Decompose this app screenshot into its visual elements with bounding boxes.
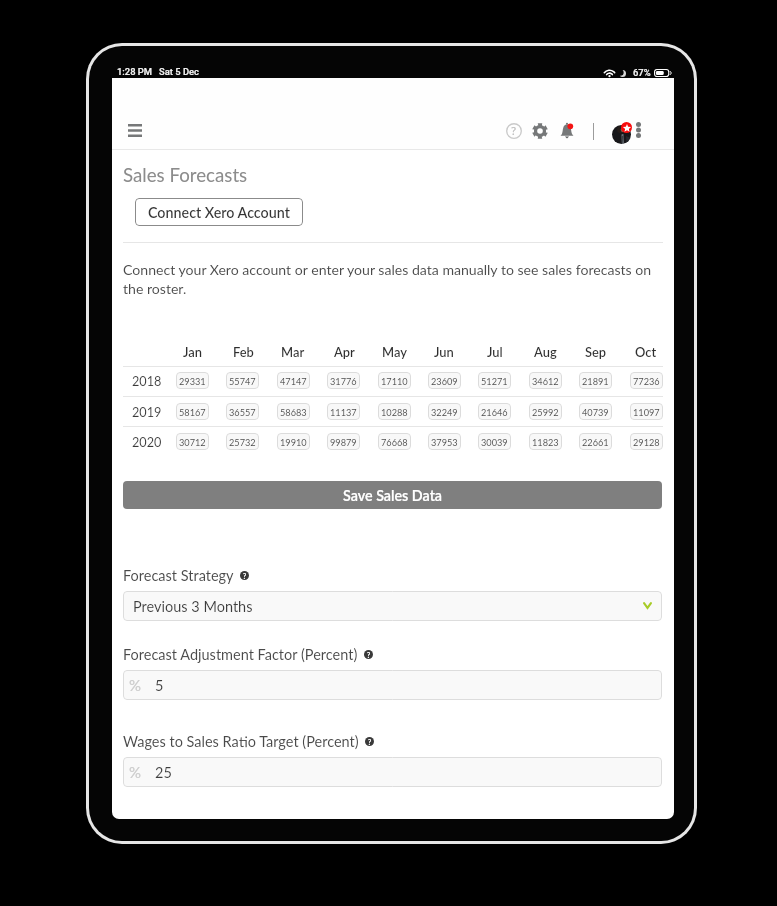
staticText: 25992	[532, 407, 559, 418]
staticText: Jan	[183, 344, 202, 359]
staticText: 22661	[582, 437, 609, 448]
button[interactable]: Save Sales Data	[123, 481, 662, 509]
button[interactable]: 29331	[176, 372, 209, 389]
staticText: 99879	[330, 437, 357, 448]
staticText: ?	[511, 124, 517, 138]
staticText: Apr	[334, 344, 355, 359]
button[interactable]: 11137	[327, 403, 360, 420]
staticText: 36557	[229, 407, 256, 418]
staticText: Sales Forecasts	[123, 164, 248, 186]
button[interactable]: 30712	[176, 433, 209, 450]
staticText: Feb	[233, 344, 254, 359]
staticText: 31776	[330, 376, 357, 387]
staticText: Sep	[585, 344, 607, 359]
staticText: 76668	[381, 437, 408, 448]
staticText: 40739	[582, 407, 609, 418]
staticText: 23609	[431, 376, 458, 387]
staticText: 29128	[633, 437, 660, 448]
staticText: 2018	[132, 373, 162, 388]
staticText: 30712	[179, 437, 206, 448]
staticText: May	[382, 344, 407, 359]
staticText: 77236	[633, 376, 660, 387]
button[interactable]: 40739	[579, 403, 612, 420]
button[interactable]: 58167	[176, 403, 209, 420]
staticText: 29331	[179, 376, 206, 387]
staticText: 21646	[481, 407, 508, 418]
button[interactable]: 99879	[327, 433, 360, 450]
staticText: Save Sales Data	[343, 487, 443, 504]
staticText: Forecast Strategy	[123, 567, 234, 584]
button[interactable]: 25992	[529, 403, 562, 420]
button[interactable]: Menu	[122, 117, 148, 143]
button[interactable]: 47147	[277, 372, 310, 389]
staticText: 10288	[381, 407, 408, 418]
staticText: 30039	[481, 437, 508, 448]
staticText: 11137	[330, 407, 357, 418]
staticText: Connect Xero Account	[148, 204, 290, 221]
staticText: Forecast Adjustment Factor (Percent)	[123, 646, 358, 663]
button[interactable]: 21646	[478, 403, 511, 420]
staticText: ?	[367, 651, 371, 659]
staticText: 67%	[633, 67, 651, 78]
staticText: 34612	[532, 376, 559, 387]
button[interactable]: 76668	[378, 433, 411, 450]
staticText: 47147	[280, 376, 307, 387]
button[interactable]: 34612	[529, 372, 562, 389]
button[interactable]: 11097	[630, 403, 663, 420]
button[interactable]: 36557	[226, 403, 259, 420]
staticText: 2020	[132, 434, 162, 449]
staticText: Jun	[434, 344, 454, 359]
button[interactable]: Help	[502, 119, 526, 143]
button[interactable]: Profile	[610, 120, 644, 142]
staticText: 19910	[280, 437, 307, 448]
staticText: 58167	[179, 407, 206, 418]
button[interactable]: 19910	[277, 433, 310, 450]
staticText: 11823	[532, 437, 559, 448]
staticText: ?	[243, 572, 247, 580]
button[interactable]: 31776	[327, 372, 360, 389]
button[interactable]: 23609	[428, 372, 461, 389]
staticText: Wages to Sales Ratio Target (Percent)	[123, 733, 359, 750]
button[interactable]: 10288	[378, 403, 411, 420]
button[interactable]: Connect Xero Account	[135, 198, 303, 226]
staticText: 25	[155, 764, 172, 781]
button[interactable]: 37953	[428, 433, 461, 450]
staticText: 11097	[633, 407, 660, 418]
staticText: 55747	[229, 376, 256, 387]
button[interactable]: 30039	[478, 433, 511, 450]
button[interactable]: 32249	[428, 403, 461, 420]
button[interactable]: More options	[630, 117, 647, 142]
staticText: Oct	[635, 344, 657, 359]
staticText: 32249	[431, 407, 458, 418]
button[interactable]: 11823	[529, 433, 562, 450]
button[interactable]: Settings	[528, 119, 552, 143]
button[interactable]: 51271	[478, 372, 511, 389]
button[interactable]: Previous 3 Months	[123, 591, 662, 621]
button[interactable]: %	[123, 670, 662, 700]
button[interactable]: 58683	[277, 403, 310, 420]
button[interactable]: 29128	[630, 433, 663, 450]
staticText: Mar	[281, 344, 305, 359]
staticText: 2019	[132, 404, 162, 419]
staticText: %	[129, 676, 142, 694]
button[interactable]: Notifications	[555, 119, 579, 143]
staticText: 5	[155, 677, 164, 694]
staticText: Connect your Xero account or enter your …	[123, 261, 674, 297]
staticText: 25732	[229, 437, 256, 448]
staticText: Aug	[534, 344, 557, 359]
staticText: 51271	[481, 376, 508, 387]
staticText: 37953	[431, 437, 458, 448]
staticText: ?	[368, 738, 372, 746]
button[interactable]: 55747	[226, 372, 259, 389]
staticText: 1:28 PM	[117, 66, 153, 77]
staticText: 17110	[381, 376, 408, 387]
button[interactable]: 25732	[226, 433, 259, 450]
button[interactable]: 17110	[378, 372, 411, 389]
button[interactable]: 22661	[579, 433, 612, 450]
staticText: Previous 3 Months	[133, 598, 253, 615]
staticText: 58683	[280, 407, 307, 418]
button[interactable]: 77236	[630, 372, 663, 389]
staticText: Jul	[487, 344, 503, 359]
button[interactable]: %	[123, 757, 662, 787]
button[interactable]: 21891	[579, 372, 612, 389]
